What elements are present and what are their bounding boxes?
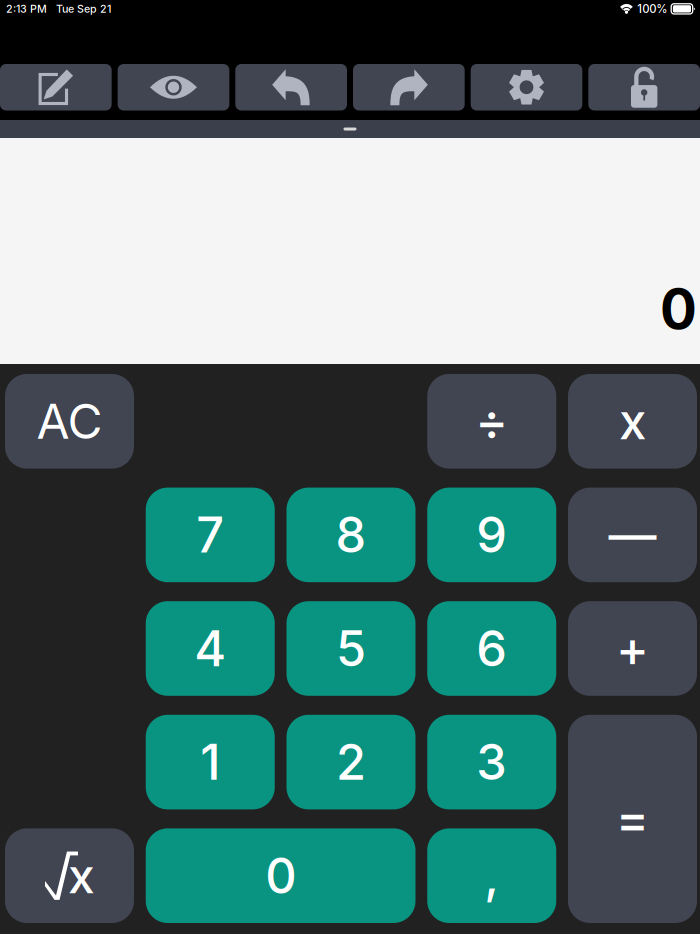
staticText: 8 — [335, 505, 366, 564]
button[interactable]: Settings — [471, 64, 582, 110]
staticText: ÷ — [475, 391, 508, 451]
staticText: AC — [36, 392, 102, 450]
button[interactable]: Redo — [353, 64, 465, 110]
staticText: x — [68, 847, 95, 905]
staticText: 2:13 PM — [6, 2, 47, 15]
staticText: 100% — [637, 2, 667, 16]
button[interactable]: 1 — [146, 715, 275, 809]
staticText: 3 — [476, 733, 507, 792]
staticText: 1 — [200, 733, 220, 792]
staticText: Tue Sep 21 — [47, 2, 111, 15]
staticText: 7 — [196, 505, 224, 564]
staticText: — — [608, 506, 656, 564]
button[interactable]: 8 — [286, 488, 415, 582]
staticText: 5 — [336, 619, 366, 678]
button[interactable]: 7 — [146, 488, 275, 582]
button[interactable]: Edit — [0, 64, 112, 110]
button[interactable]: 5 — [286, 601, 415, 696]
staticText: = — [616, 789, 649, 849]
staticText: 9 — [476, 505, 507, 564]
button[interactable]: Preview — [118, 64, 229, 110]
button[interactable]: 4 — [146, 601, 275, 696]
button[interactable]: 9 — [427, 488, 556, 582]
staticText: + — [616, 619, 649, 678]
button[interactable]: 0 — [146, 828, 416, 923]
button[interactable]: Undo — [235, 64, 347, 110]
button[interactable]: , — [427, 828, 556, 923]
button[interactable]: Square root — [5, 828, 134, 923]
button[interactable]: x — [568, 374, 697, 469]
button[interactable]: AC — [5, 374, 134, 469]
staticText: x — [619, 391, 646, 451]
button[interactable]: 6 — [427, 601, 556, 696]
button[interactable]: + — [568, 601, 697, 696]
button[interactable]: ÷ — [427, 374, 556, 469]
button[interactable]: 2 — [286, 715, 415, 809]
staticText: 0 — [660, 276, 697, 342]
staticText: 0 — [265, 846, 296, 905]
staticText: 2 — [336, 733, 366, 792]
staticText: 6 — [476, 619, 507, 678]
button[interactable]: 3 — [427, 715, 556, 809]
staticText: 4 — [194, 619, 226, 678]
button[interactable]: — — [568, 488, 697, 582]
button[interactable]: = — [568, 715, 697, 923]
staticText: , — [484, 846, 499, 905]
button[interactable]: Unlock — [588, 64, 700, 110]
